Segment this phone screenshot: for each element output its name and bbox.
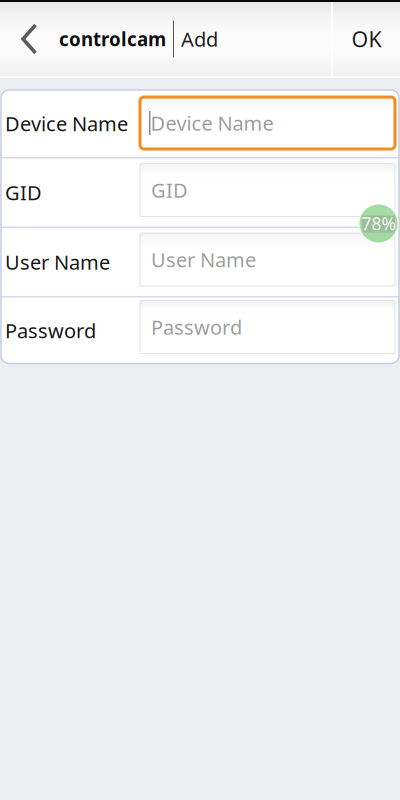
staticText: Password	[5, 317, 96, 344]
staticText: Device Name	[150, 110, 273, 136]
staticText: controlcam	[59, 27, 166, 51]
staticText: User Name	[151, 246, 256, 273]
staticText: GID	[5, 179, 42, 206]
staticText: 78%	[361, 212, 395, 235]
staticText: OK	[351, 25, 381, 53]
staticText: Device Name	[5, 110, 128, 137]
button[interactable]: Back	[0, 2, 59, 76]
button[interactable]: OK	[333, 2, 400, 76]
staticText: Add	[181, 26, 218, 52]
staticText: User Name	[5, 249, 110, 275]
staticText: GID	[151, 177, 188, 203]
staticText: Password	[151, 314, 242, 340]
